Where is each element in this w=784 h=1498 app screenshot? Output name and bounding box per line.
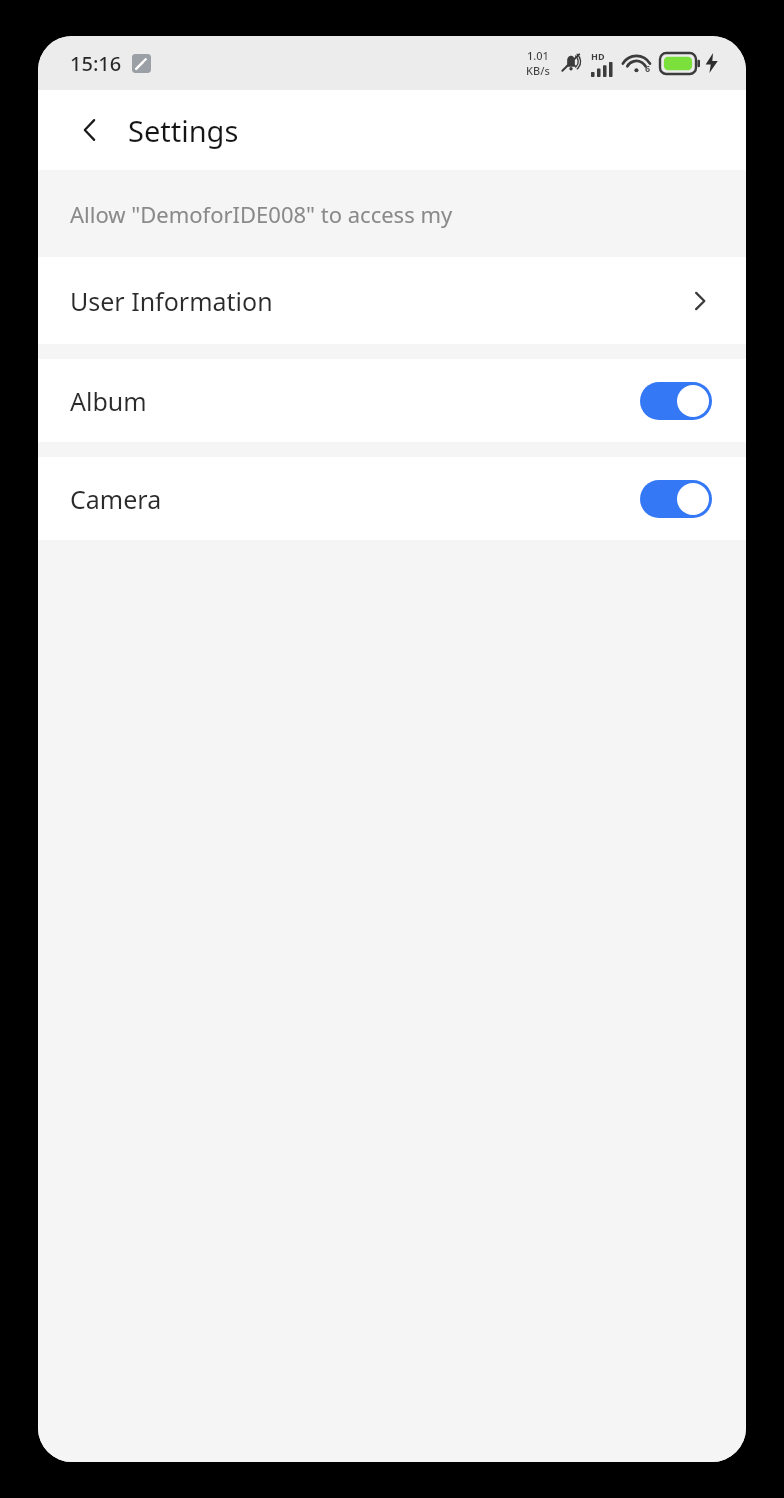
staticText: 1.01 bbox=[527, 48, 549, 63]
button[interactable]: Camera bbox=[38, 457, 746, 540]
staticText: 15:16 bbox=[70, 50, 122, 77]
button[interactable]: User Information bbox=[38, 257, 746, 344]
staticText: User Information bbox=[70, 284, 273, 318]
staticText: 6 bbox=[645, 62, 651, 74]
button[interactable]: Toggle on bbox=[640, 382, 712, 420]
staticText: Allow "DemoforIDE008" to access my bbox=[70, 199, 453, 229]
staticText: Album bbox=[70, 384, 147, 418]
staticText: HD bbox=[591, 50, 605, 62]
staticText: Settings bbox=[128, 111, 239, 150]
button[interactable]: Toggle on bbox=[640, 480, 712, 518]
staticText: KB/s bbox=[526, 63, 550, 78]
staticText: Camera bbox=[70, 482, 162, 516]
button[interactable]: Back bbox=[66, 106, 114, 154]
button[interactable]: Album bbox=[38, 359, 746, 442]
